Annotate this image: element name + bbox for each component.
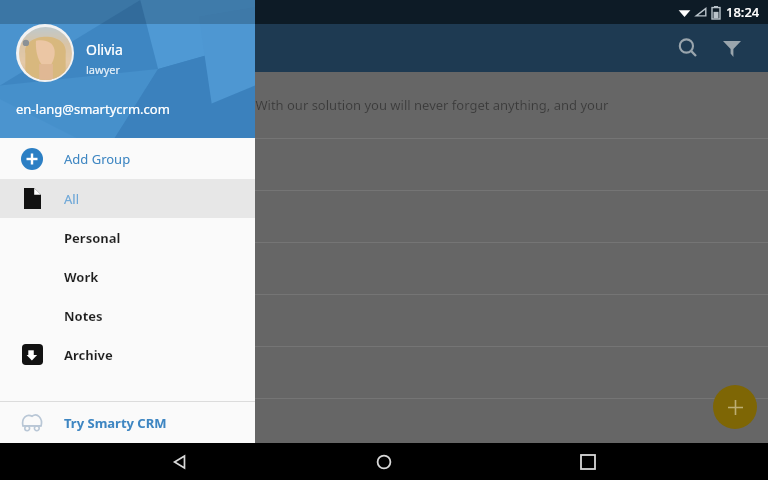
staticText: Archive <box>64 346 113 364</box>
button[interactable]: Work <box>0 257 255 296</box>
button[interactable] <box>0 399 768 443</box>
staticText: Add Group <box>64 150 131 168</box>
staticText: Try Smarty CRM <box>64 414 167 432</box>
staticText: Work <box>64 268 99 286</box>
button[interactable] <box>0 191 768 242</box>
staticText: 18:24 <box>726 3 760 21</box>
button[interactable]: Personal <box>0 218 255 257</box>
staticText: All <box>64 190 80 208</box>
button[interactable] <box>0 139 768 190</box>
button[interactable] <box>0 243 768 294</box>
button[interactable]: Notes <box>0 296 255 335</box>
button[interactable]: Home <box>360 443 408 480</box>
button[interactable]: Recents <box>564 443 612 480</box>
staticText: they were not written down immediately. … <box>2 96 609 114</box>
button[interactable] <box>0 295 768 346</box>
button[interactable]: Archive <box>0 335 255 374</box>
staticText: Notes <box>64 307 103 325</box>
button[interactable]: Search <box>666 26 710 70</box>
button[interactable]: Add Group <box>0 138 255 179</box>
staticText: en-lang@smartycrm.com <box>16 100 170 118</box>
staticText: lawyer <box>86 62 121 77</box>
button[interactable]: All <box>0 179 255 218</box>
button[interactable]: Add note <box>713 385 757 429</box>
staticText: Personal <box>64 229 121 247</box>
button[interactable] <box>0 347 768 398</box>
staticText: Olivia <box>86 40 123 59</box>
button[interactable]: Back <box>156 443 204 480</box>
button[interactable]: Try Smarty CRM <box>0 402 255 443</box>
button[interactable]: Filter <box>710 26 754 70</box>
